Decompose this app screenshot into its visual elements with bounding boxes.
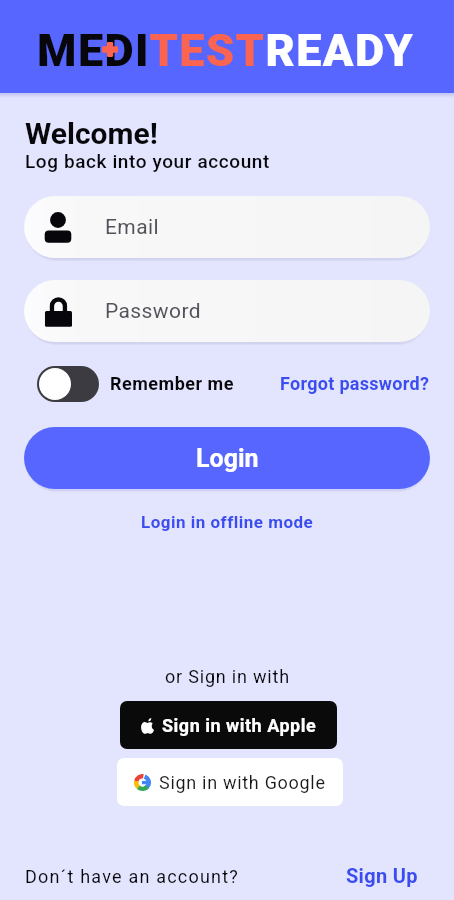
button[interactable]: Forgot password? — [280, 373, 430, 394]
staticText: Password — [105, 299, 201, 324]
staticText: Welcome! — [25, 116, 158, 151]
button[interactable]: Sign Up — [346, 864, 418, 887]
button[interactable]: Sign in with Apple — [120, 701, 337, 749]
staticText: Email — [105, 215, 159, 240]
staticText: Sign in with Apple — [162, 715, 317, 736]
staticText: MEDITESTREADY — [37, 24, 415, 77]
staticText: Sign in with Google — [159, 772, 326, 793]
staticText: Log back into your account — [25, 150, 270, 172]
staticText: Login — [196, 444, 259, 473]
staticText: or Sign in with — [165, 666, 290, 687]
staticText: Sign Up — [346, 864, 418, 887]
button[interactable]: Remember me toggle — [37, 366, 99, 402]
button[interactable]: Login — [24, 427, 430, 489]
button[interactable]: Login in offline mode — [141, 512, 314, 532]
staticText: Don´t have an account? — [25, 866, 239, 887]
button[interactable]: Sign in with Google — [117, 758, 343, 806]
button[interactable]: Password — [24, 280, 430, 342]
staticText: Forgot password? — [280, 373, 430, 394]
staticText: Remember me — [110, 373, 234, 394]
staticText: Login in offline mode — [141, 512, 314, 532]
button[interactable]: Email — [24, 196, 430, 258]
